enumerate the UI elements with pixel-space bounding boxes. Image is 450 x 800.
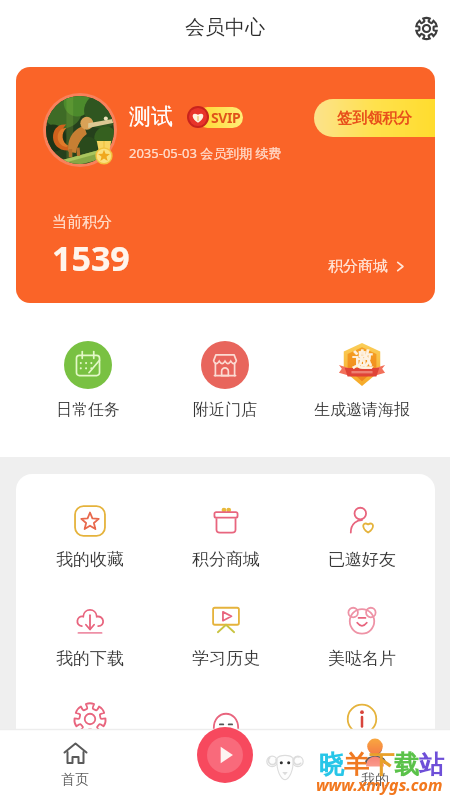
button[interactable]: 我的 — [300, 729, 450, 800]
button[interactable]: 积分商城 — [158, 504, 294, 570]
staticText: 我的收藏 — [56, 549, 124, 570]
staticText: 2035-05-03 会员到期 续费 — [129, 144, 282, 162]
button[interactable]: Settings — [408, 10, 444, 46]
button[interactable]: 积分商城 — [328, 257, 406, 276]
staticText: 羊 — [344, 749, 369, 780]
button[interactable]: 已邀好友 — [294, 504, 430, 570]
button[interactable]: 签到领积分 — [314, 99, 435, 137]
button[interactable]: 美哒名片 — [294, 603, 430, 669]
staticText: 邀 — [352, 347, 373, 373]
button[interactable]: 签到领积分 — [16, 67, 435, 303]
button[interactable] — [21, 702, 158, 747]
button[interactable]: 我的收藏 — [21, 504, 158, 570]
button[interactable]: Play — [197, 727, 253, 783]
staticText: 积分商城 — [328, 257, 388, 276]
staticText: 首页 — [61, 771, 89, 789]
button[interactable]: 附近门店 — [156, 341, 293, 420]
button[interactable] — [294, 702, 430, 747]
button[interactable]: 我的下载 — [21, 603, 158, 669]
staticText: 美哒名片 — [328, 648, 396, 669]
staticText: 签到领积分 — [337, 109, 412, 128]
button[interactable]: 日常任务 — [20, 341, 156, 420]
staticText: 1539 — [52, 235, 130, 281]
staticText: 已邀好友 — [328, 549, 396, 570]
staticText: 下 — [369, 749, 394, 780]
staticText: 生成邀请海报 — [314, 400, 410, 420]
staticText: 载 — [394, 749, 419, 780]
staticText: SVIP — [211, 108, 241, 127]
staticText: 我的下载 — [56, 648, 124, 669]
button[interactable] — [158, 702, 294, 747]
button[interactable]: 首页 — [0, 729, 150, 800]
staticText: 会员中心 — [185, 15, 265, 40]
staticText: 当前积分 — [52, 213, 112, 232]
button[interactable]: 学习历史 — [158, 603, 294, 669]
button[interactable]: 邀 — [293, 341, 430, 420]
staticText: www.xmygs.com — [316, 774, 443, 796]
staticText: 附近门店 — [193, 400, 257, 420]
staticText: 积分商城 — [192, 549, 260, 570]
staticText: 站 — [419, 749, 444, 780]
staticText: 晓 — [319, 749, 344, 780]
staticText: 日常任务 — [56, 400, 120, 420]
staticText: 测试 — [129, 103, 173, 131]
staticText: 学习历史 — [192, 648, 260, 669]
staticText: 我的 — [361, 771, 389, 789]
